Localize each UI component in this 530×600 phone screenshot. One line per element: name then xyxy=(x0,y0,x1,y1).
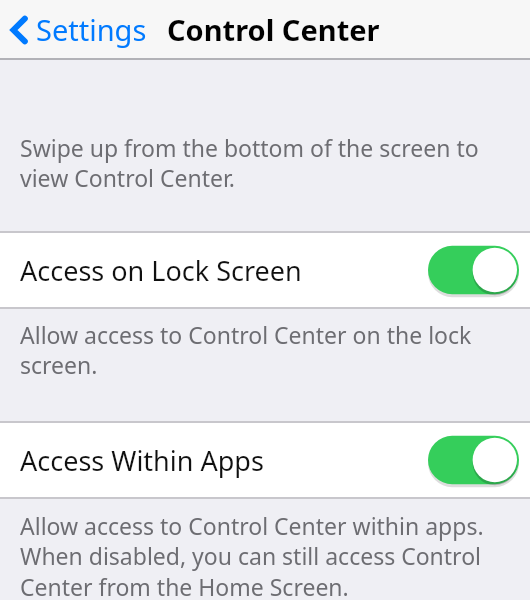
staticText: Access Within Apps xyxy=(20,442,264,479)
staticText: Settings xyxy=(36,10,147,49)
button[interactable]: Access on Lock Screen xyxy=(0,233,530,307)
button[interactable]: Toggle xyxy=(428,434,519,486)
staticText: Control Center xyxy=(167,10,380,49)
button[interactable]: Access Within Apps xyxy=(0,423,530,497)
button[interactable]: Settings xyxy=(9,10,147,49)
staticText: Allow access to Control Center within ap… xyxy=(20,510,512,600)
staticText: Swipe up from the bottom of the screen t… xyxy=(20,132,512,194)
staticText: Allow access to Control Center on the lo… xyxy=(20,319,512,381)
button[interactable]: Toggle xyxy=(428,244,519,296)
staticText: Access on Lock Screen xyxy=(20,252,302,289)
